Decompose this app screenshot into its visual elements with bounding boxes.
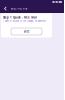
staticText: Step 1 Quick - Free Trial — [3, 16, 37, 19]
staticText: Select Free Trial — [11, 7, 28, 10]
button[interactable]: Back — [1, 4, 9, 12]
staticText: 7 days of access to the full app, no pay… — [3, 20, 46, 22]
staticText: Select — [23, 30, 29, 33]
button[interactable]: Select — [11, 28, 42, 35]
